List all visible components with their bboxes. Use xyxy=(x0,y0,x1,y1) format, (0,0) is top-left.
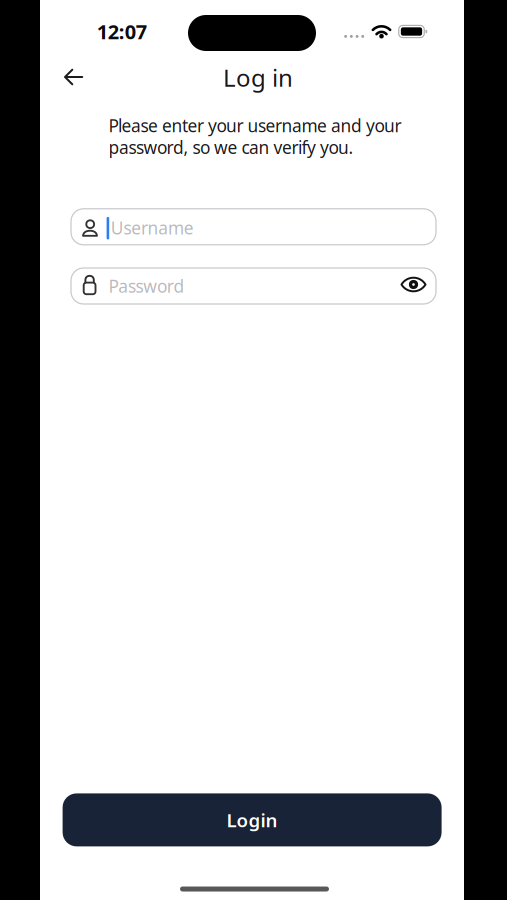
staticText: Password xyxy=(108,274,184,297)
staticText: Login xyxy=(227,807,278,832)
staticText: password, so we can verify you. xyxy=(108,136,353,159)
staticText: Please enter your username and your xyxy=(108,114,401,137)
button[interactable]: Back xyxy=(51,55,95,99)
button[interactable]: Show password xyxy=(393,267,433,301)
staticText: Username xyxy=(111,216,194,239)
staticText: Log in xyxy=(223,62,293,93)
button[interactable]: Login xyxy=(63,793,442,846)
staticText: 12:07 xyxy=(97,18,147,45)
